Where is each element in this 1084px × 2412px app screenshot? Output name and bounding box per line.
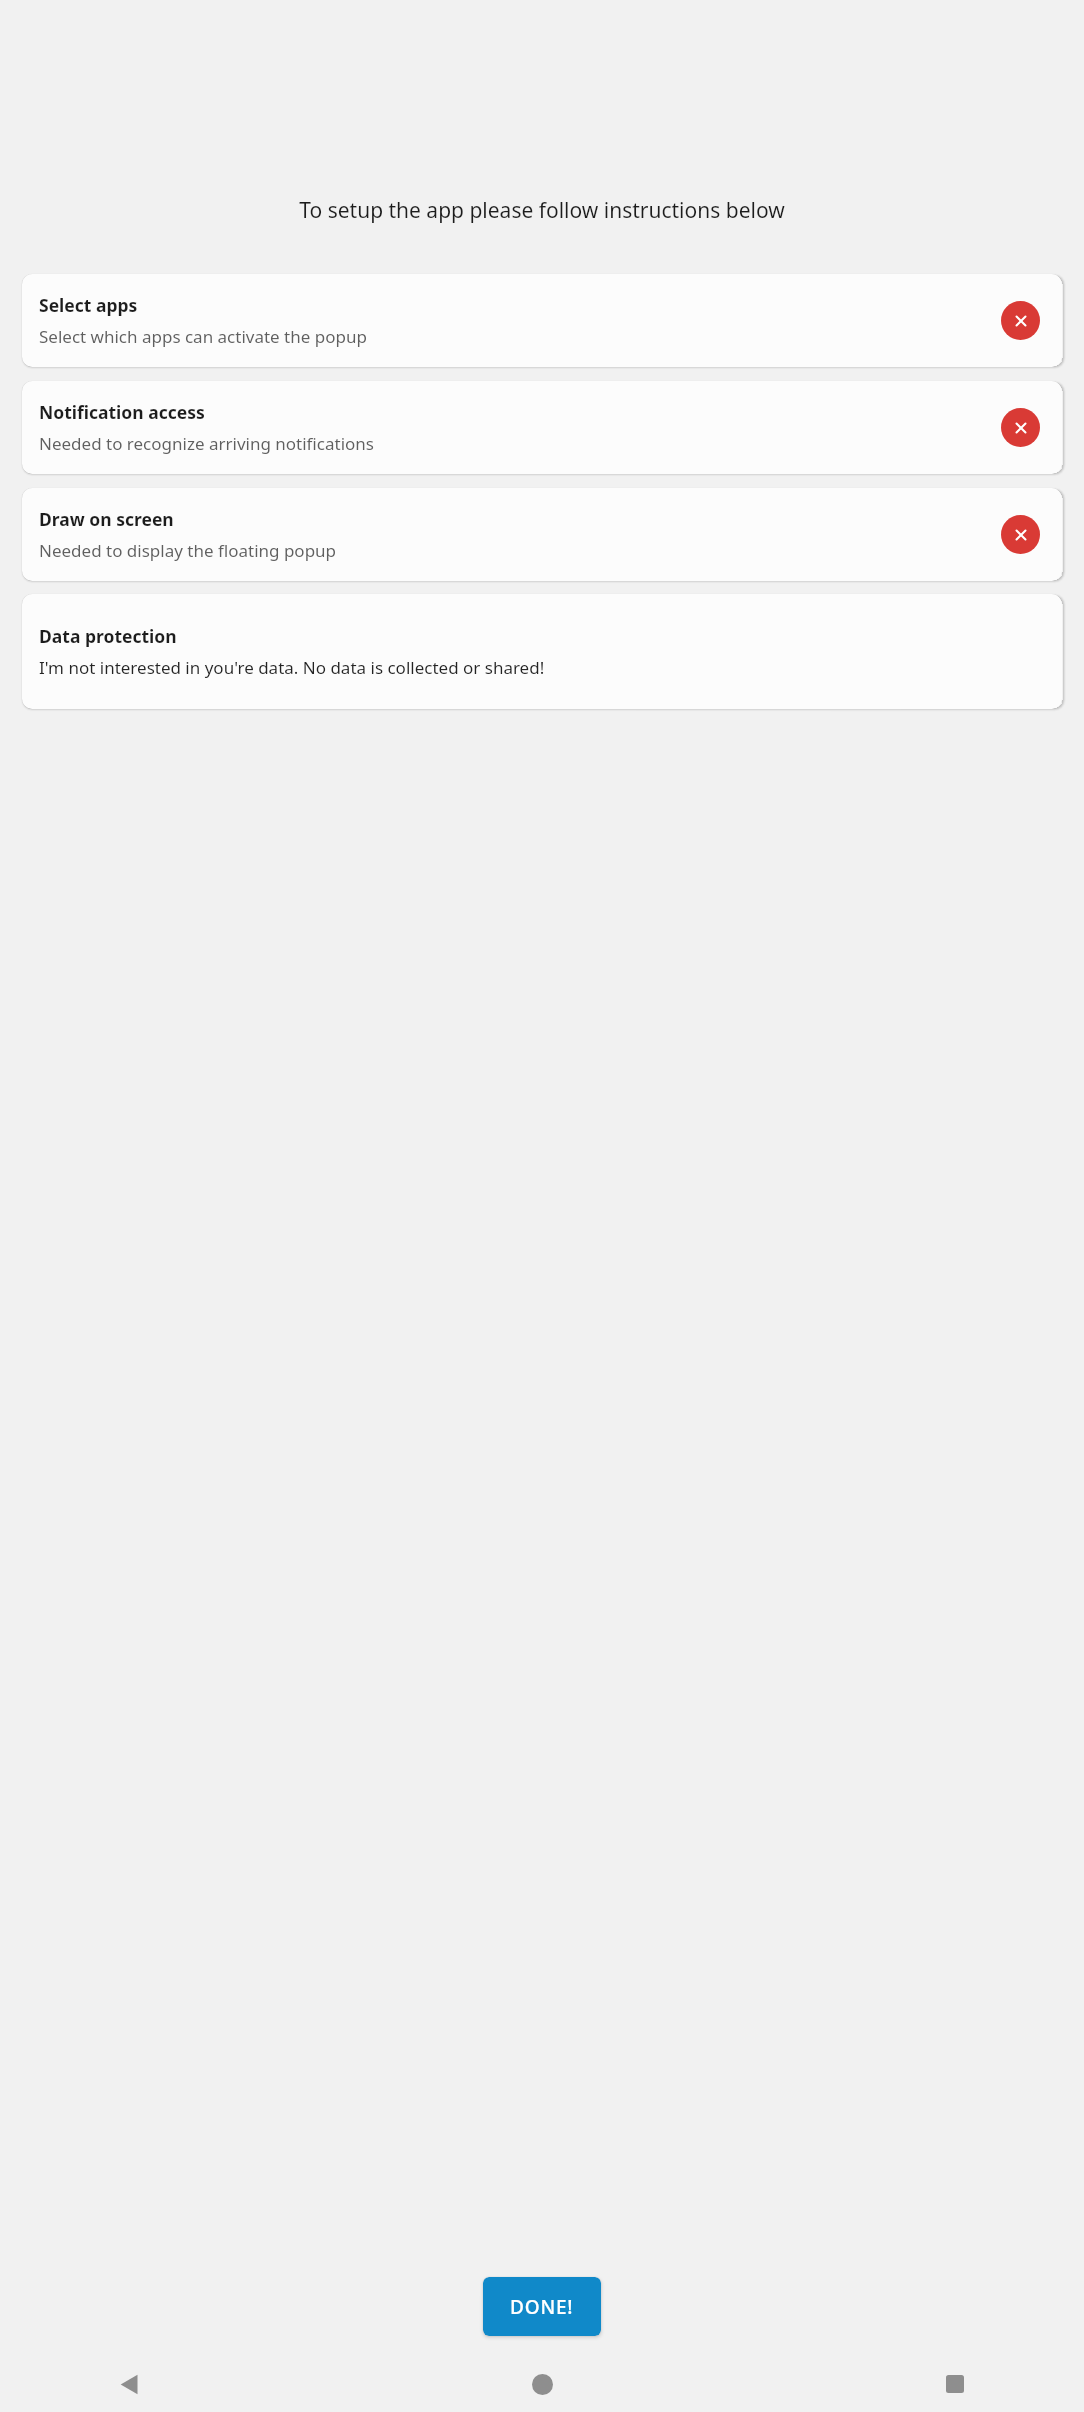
staticText: Notification access [39, 400, 205, 424]
button[interactable]: Draw on screen [22, 488, 1062, 581]
staticText: Data protection [39, 624, 177, 648]
button[interactable]: Not granted: Notification access [1001, 408, 1040, 447]
button[interactable]: DONE! [483, 2277, 601, 2336]
staticText: I'm not interested in you're data. No da… [39, 656, 545, 679]
staticText: Needed to display the floating popup [39, 539, 337, 562]
staticText: Select apps [39, 293, 138, 317]
staticText: Select which apps can activate the popup [39, 325, 367, 348]
button[interactable]: Not granted: Draw on screen [1001, 515, 1040, 554]
button[interactable]: Notification access [22, 381, 1062, 474]
staticText: Draw on screen [39, 507, 174, 531]
button[interactable]: Not granted: Select apps [1001, 301, 1040, 340]
button[interactable]: Data protection [22, 594, 1062, 709]
staticText: Needed to recognize arriving notificatio… [39, 432, 374, 455]
staticText: DONE! [510, 2294, 574, 2320]
button[interactable]: Home [525, 2367, 559, 2401]
button[interactable]: Back [112, 2367, 146, 2401]
button[interactable]: Recent apps [938, 2367, 972, 2401]
staticText: To setup the app please follow instructi… [72, 196, 1012, 225]
button[interactable]: Select apps [22, 274, 1062, 367]
